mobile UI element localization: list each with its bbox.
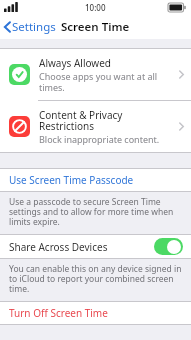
button[interactable]: Always Allowed	[0, 49, 191, 100]
staticText: Always Allowed	[39, 56, 111, 70]
staticText: Turn Off Screen Time	[9, 306, 108, 320]
button[interactable]: Content & Privacy Restrictions	[0, 101, 191, 152]
button[interactable]: Share Across Devices	[0, 235, 191, 258]
staticText: Settings	[12, 19, 56, 35]
staticText: Use a passcode to secure Screen Time set…	[9, 196, 182, 228]
staticText: 10:00	[85, 2, 106, 13]
staticText: Content & Privacy Restrictions	[39, 108, 175, 133]
staticText: You can enable this on any device signed…	[9, 263, 182, 295]
button[interactable]: Turn Off Screen Time	[0, 302, 191, 324]
button[interactable]: Settings	[0, 19, 60, 35]
staticText: Screen Time	[61, 19, 130, 35]
staticText: Use Screen Time Passcode	[9, 173, 134, 187]
staticText: Choose apps you want at all times.	[39, 70, 175, 93]
button[interactable]: Use Screen Time Passcode	[0, 169, 191, 191]
staticText: Share Across Devices	[9, 240, 154, 254]
staticText: Block inappropriate content.	[39, 133, 160, 145]
